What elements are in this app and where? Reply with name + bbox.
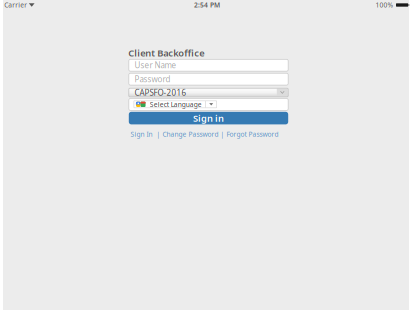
button[interactable]: Forgot Password	[226, 130, 278, 139]
staticText: |	[154, 130, 162, 139]
button[interactable]: Select Language	[134, 101, 217, 108]
button[interactable]: Password	[129, 73, 288, 85]
button[interactable]: Sign in	[129, 112, 288, 124]
staticText: Change Password	[162, 130, 218, 139]
staticText: Select Language	[150, 100, 202, 109]
staticText: 100%	[375, 1, 393, 9]
staticText: User Name	[134, 60, 176, 70]
button[interactable]: Client Backoffice	[128, 47, 204, 59]
staticText: Carrier	[4, 1, 27, 9]
staticText: 2:54 PM	[194, 1, 220, 9]
button[interactable]: Sign In	[130, 130, 154, 139]
staticText: Sign In	[130, 130, 154, 139]
button[interactable]: CAPSFO-2016	[129, 88, 288, 97]
staticText: |	[218, 130, 226, 139]
staticText: Sign in	[193, 112, 224, 124]
button[interactable]: Change Password	[162, 130, 218, 139]
staticText: Forgot Password	[226, 130, 278, 139]
staticText: CAPSFO-2016	[135, 87, 187, 98]
staticText: Password	[134, 74, 170, 84]
button[interactable]: User Name	[129, 59, 288, 71]
staticText: Client Backoffice	[128, 47, 204, 59]
